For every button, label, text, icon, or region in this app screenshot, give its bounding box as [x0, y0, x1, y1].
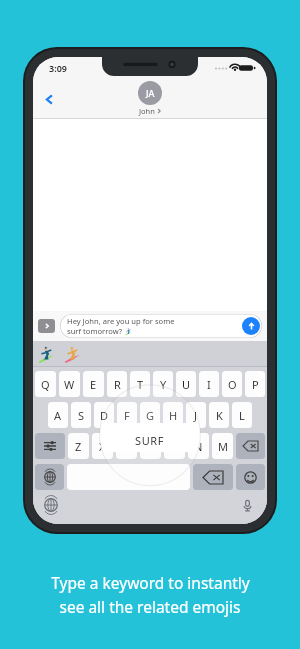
- staticText: W: [64, 377, 75, 392]
- staticText: see all the related emojis: [59, 596, 241, 617]
- button[interactable]: H: [163, 402, 183, 428]
- button[interactable]: J: [186, 402, 206, 428]
- button[interactable]: Back: [38, 88, 60, 110]
- button[interactable]: Settings: [35, 433, 65, 459]
- button[interactable]: U: [176, 371, 196, 397]
- button[interactable]: Delete: [193, 464, 233, 490]
- button[interactable]: C: [116, 433, 137, 459]
- button[interactable]: S: [71, 402, 91, 428]
- button[interactable]: JA: [138, 81, 162, 116]
- button[interactable]: O: [222, 371, 242, 397]
- button[interactable]: K: [209, 402, 229, 428]
- button[interactable]: X: [92, 433, 113, 459]
- button[interactable]: N: [188, 433, 209, 459]
- button[interactable]: Hey John, are you up for some: [60, 314, 262, 338]
- staticText: X: [99, 439, 106, 454]
- button[interactable]: [67, 464, 190, 490]
- button[interactable]: Z: [68, 433, 89, 459]
- staticText: G: [146, 408, 155, 423]
- staticText: Q: [41, 377, 50, 392]
- button[interactable]: Switch keyboard: [35, 464, 64, 490]
- button[interactable]: Dictation: [239, 497, 255, 513]
- staticText: P: [252, 377, 259, 392]
- button[interactable]: T: [130, 371, 150, 397]
- staticText: K: [216, 408, 223, 423]
- button[interactable]: L: [232, 402, 252, 428]
- staticText: I: [207, 377, 211, 392]
- staticText: T: [137, 377, 144, 392]
- staticText: S: [78, 408, 85, 423]
- staticText: M: [218, 439, 228, 454]
- staticText: A: [54, 408, 62, 423]
- staticText: John: [139, 106, 155, 116]
- staticText: J: [194, 408, 198, 423]
- button[interactable]: F: [117, 402, 137, 428]
- button[interactable]: A: [48, 402, 68, 428]
- staticText: R: [114, 377, 121, 392]
- button[interactable]: M: [212, 433, 233, 459]
- button[interactable]: W: [59, 371, 80, 397]
- staticText: SURF: [135, 433, 165, 448]
- staticText: D: [100, 408, 109, 423]
- staticText: V: [147, 439, 154, 454]
- button[interactable]: G: [140, 402, 160, 428]
- button[interactable]: R: [107, 371, 127, 397]
- staticText: U: [182, 377, 191, 392]
- button[interactable]: Language: [43, 497, 59, 513]
- staticText: JA: [146, 87, 155, 99]
- button[interactable]: Send: [242, 317, 260, 335]
- button[interactable]: I: [199, 371, 219, 397]
- staticText: 3:09: [49, 62, 67, 74]
- staticText: surf tomorrow?: [67, 326, 123, 336]
- staticText: E: [90, 377, 97, 392]
- button[interactable]: Emoji: [236, 464, 265, 490]
- staticText: Hey John, are you up for some: [67, 316, 175, 326]
- button[interactable]: Backspace: [236, 433, 265, 459]
- button[interactable]: V: [140, 433, 161, 459]
- button[interactable]: P: [245, 371, 265, 397]
- staticText: N: [194, 439, 203, 454]
- button[interactable]: More apps: [38, 319, 55, 333]
- staticText: Y: [160, 377, 167, 392]
- staticText: H: [169, 408, 178, 423]
- staticText: Type a keyword to instantly: [51, 572, 250, 593]
- button[interactable]: D: [94, 402, 114, 428]
- staticText: Z: [75, 439, 82, 454]
- button[interactable]: Q: [35, 371, 56, 397]
- button[interactable]: Y: [153, 371, 173, 397]
- staticText: L: [239, 408, 245, 423]
- staticText: O: [228, 377, 237, 392]
- button[interactable]: E: [83, 371, 104, 397]
- staticText: F: [124, 408, 130, 423]
